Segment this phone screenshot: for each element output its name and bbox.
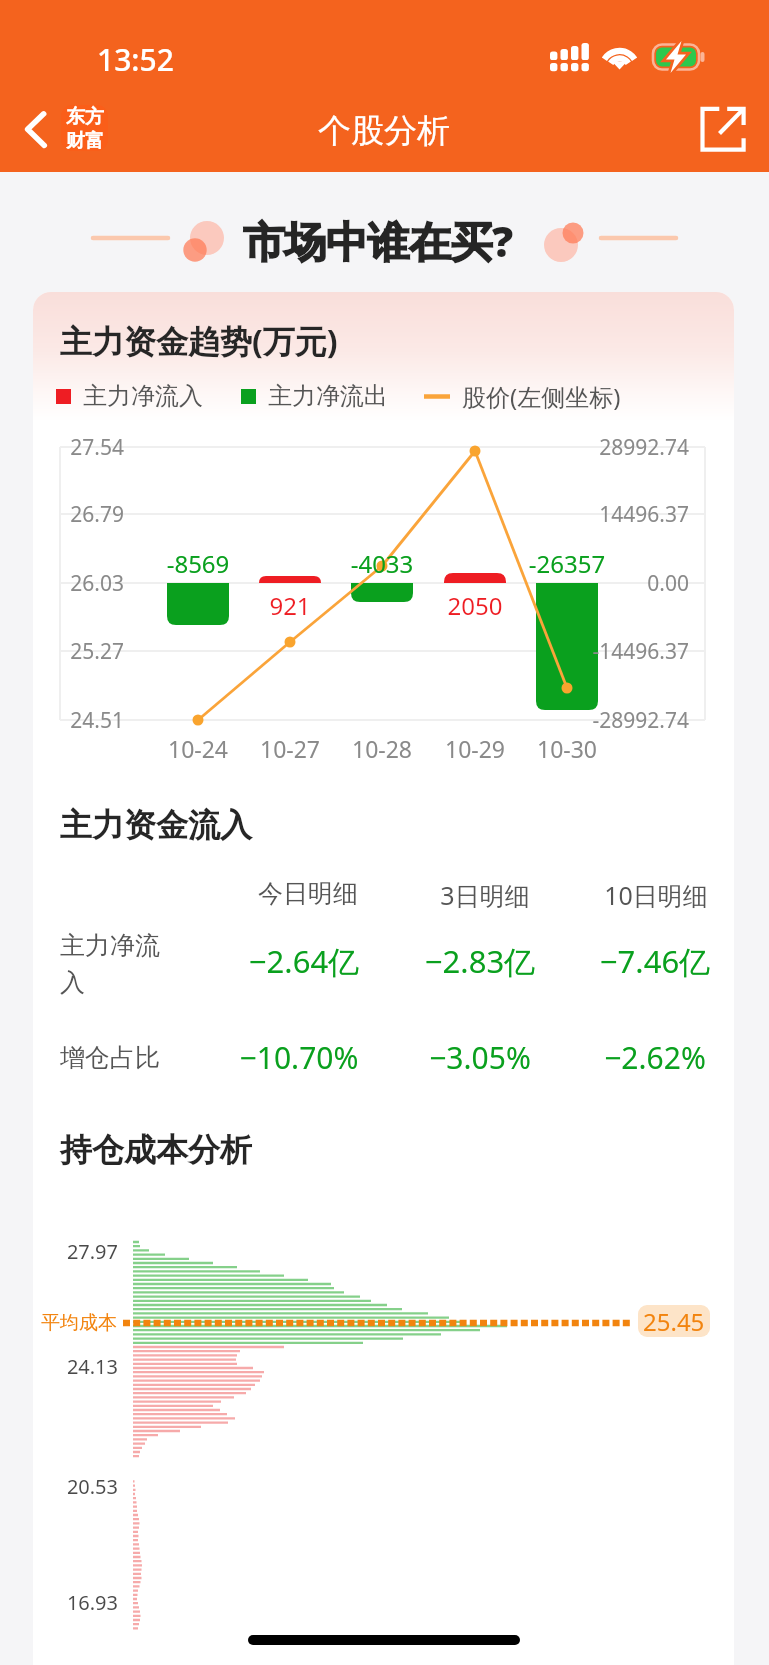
staticText: 市场中谁在买? [243,212,513,269]
staticText: 2050 [415,589,535,622]
staticText: 增仓占比 [60,1042,160,1073]
staticText: 3日明细 [385,878,585,912]
staticText: 28992.74 [539,433,689,462]
staticText: -26357 [507,547,627,580]
staticText: 主力净流入 [83,381,203,411]
staticText: −2.62% [555,1037,734,1078]
staticText: −2.83亿 [380,940,580,982]
staticText: −10.70% [199,1037,399,1078]
staticText: 10日明细 [556,878,734,912]
button[interactable]: Back [8,96,64,152]
staticText: 持仓成本分析 [60,1130,252,1170]
button[interactable]: Share [692,98,754,160]
staticText: 14496.37 [539,500,689,529]
staticText: 25.45 [643,1305,705,1337]
staticText: 股价(左侧坐标) [462,380,621,412]
staticText: 个股分析 [318,110,450,152]
staticText: 24.13 [33,1353,118,1380]
staticText: 主力净流入 [60,930,164,998]
staticText: 27.97 [33,1238,118,1265]
staticText: -28992.74 [539,706,689,735]
staticText: 今日明细 [208,878,408,909]
staticText: 25.27 [33,637,124,666]
staticText: 20.53 [33,1473,118,1500]
staticText: 10-24 [148,733,248,764]
staticText: 10-28 [332,733,432,764]
staticText: 主力资金流入 [60,805,252,845]
staticText: -14496.37 [539,637,689,666]
staticText: 26.03 [33,569,124,598]
staticText: −7.46亿 [555,940,734,982]
staticText: 主力净流出 [268,381,388,411]
staticText: 26.79 [33,500,124,529]
staticText: 东方 [66,105,104,129]
staticText: −3.05% [380,1037,580,1078]
staticText: 27.54 [33,433,124,462]
staticText: 10-27 [240,733,340,764]
staticText: 13:52 [97,39,174,80]
staticText: 10-29 [425,733,525,764]
staticText: 财富 [66,129,104,151]
staticText: 平均成本 [41,1311,117,1335]
staticText: −2.64亿 [204,940,404,982]
staticText: 主力资金趋势(万元) [60,319,338,363]
staticText: 10-30 [517,733,617,764]
staticText: 16.93 [33,1589,118,1616]
staticText: -4033 [322,547,442,580]
staticText: 921 [230,589,350,622]
staticText: 0.00 [539,569,689,598]
staticText: -8569 [138,547,258,580]
staticText: 24.51 [33,706,124,735]
button[interactable]: 东方 [61,105,108,151]
